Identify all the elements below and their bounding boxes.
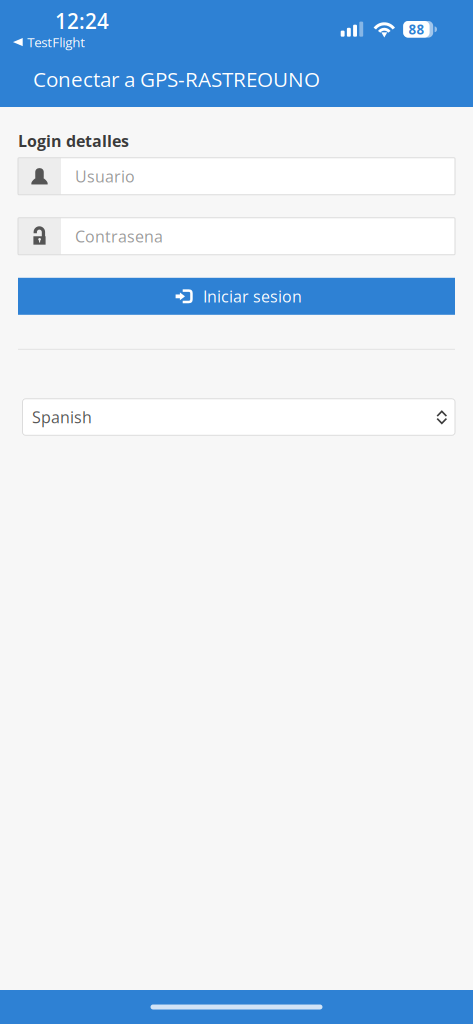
button[interactable]: Contrasena (18, 218, 455, 255)
staticText: Contrasena (75, 225, 163, 247)
staticText: TestFlight (27, 33, 85, 51)
button[interactable]: Spanish (18, 399, 455, 435)
staticText: Usuario (75, 165, 135, 187)
staticText: Login detalles (18, 130, 129, 152)
staticText: Spanish (32, 406, 92, 428)
staticText: Conectar a GPS-RASTREOUNO (33, 65, 320, 93)
staticText: Iniciar sesion (203, 285, 302, 307)
staticText: 12:24 (55, 7, 109, 35)
button[interactable]: Usuario (18, 158, 455, 195)
button[interactable]: Iniciar sesion (18, 278, 455, 315)
button[interactable]: TestFlight (0, 0, 85, 51)
staticText: 88 (409, 20, 425, 38)
